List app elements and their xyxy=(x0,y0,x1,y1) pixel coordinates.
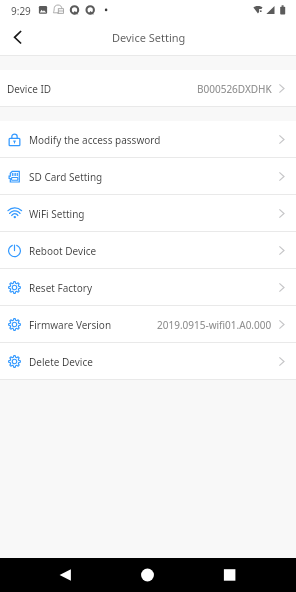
staticText: 9:29 xyxy=(11,4,31,18)
button[interactable]: WiFi Setting xyxy=(0,195,296,232)
staticText: Device ID xyxy=(7,82,52,96)
staticText: Modify the access password xyxy=(29,133,161,147)
button[interactable]: Back xyxy=(0,22,34,56)
button[interactable]: Recents xyxy=(211,558,249,592)
staticText: Device Setting xyxy=(112,30,186,45)
button[interactable]: Back xyxy=(46,558,84,592)
staticText: 2019.0915-wifi01.A0.000 xyxy=(157,318,272,332)
button[interactable]: Modify the access password xyxy=(0,121,296,158)
staticText: SD Card Setting xyxy=(29,170,103,184)
staticText: Firmware Version xyxy=(29,318,112,332)
button[interactable]: Delete Device xyxy=(0,343,296,380)
staticText: B000526DXDHK xyxy=(197,82,272,96)
button[interactable]: Reboot Device xyxy=(0,232,296,269)
staticText: Delete Device xyxy=(29,355,93,369)
button[interactable]: Device ID xyxy=(0,70,296,107)
button[interactable]: Reset Factory xyxy=(0,269,296,306)
button[interactable]: Home xyxy=(129,558,167,592)
staticText: Reboot Device xyxy=(29,244,97,258)
button[interactable]: SD Card Setting xyxy=(0,158,296,195)
staticText: WiFi Setting xyxy=(29,207,85,221)
staticText: Reset Factory xyxy=(29,281,92,295)
button[interactable]: Firmware Version xyxy=(0,306,296,343)
